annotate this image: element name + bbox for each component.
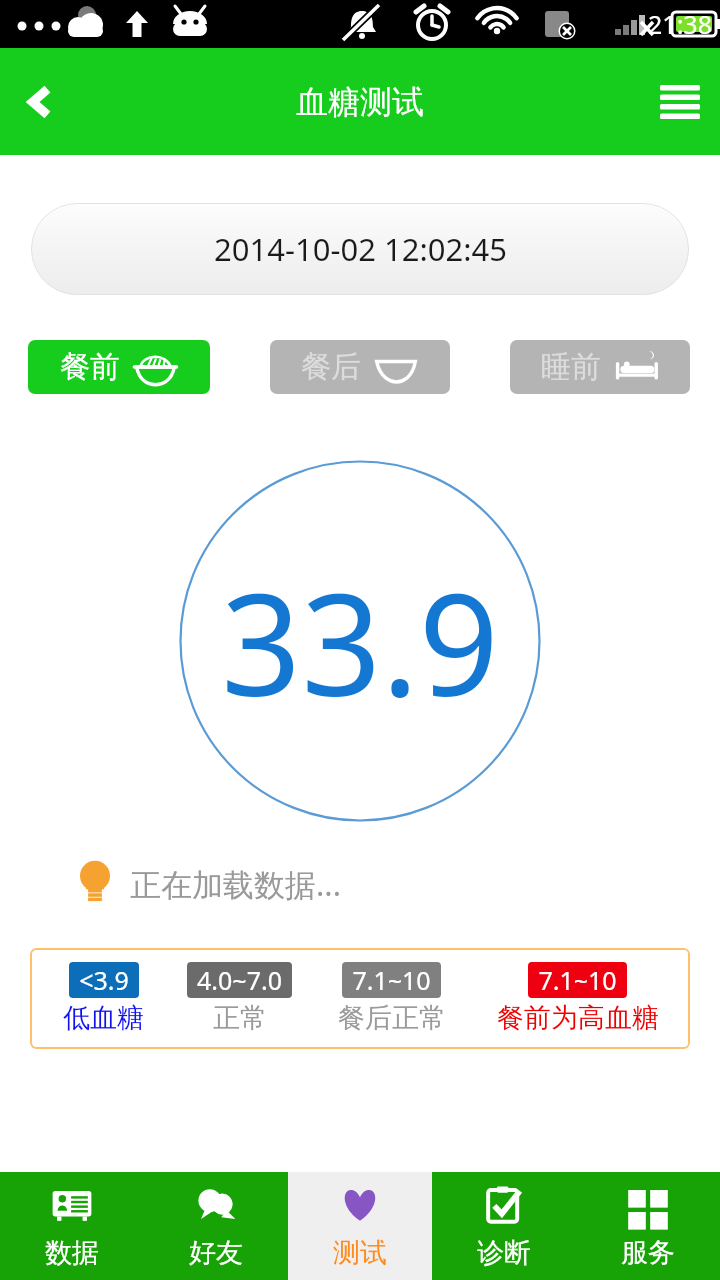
button[interactable]: 4.0~7.0: [169, 948, 310, 1049]
staticText: 好友: [189, 1236, 243, 1270]
button[interactable]: 睡前: [510, 340, 690, 394]
button[interactable]: 7.1~10: [310, 948, 473, 1049]
button[interactable]: 好友: [144, 1172, 288, 1280]
staticText: 正在加载数据...: [130, 863, 341, 905]
staticText: 21:38: [648, 7, 712, 41]
staticText: 正常: [213, 1001, 267, 1035]
button[interactable]: <3.9: [38, 948, 169, 1049]
button[interactable]: 7.1~10: [473, 948, 682, 1049]
button[interactable]: Back: [0, 48, 80, 155]
button[interactable]: 服务: [576, 1172, 720, 1280]
button[interactable]: 诊断: [432, 1172, 576, 1280]
button[interactable]: 餐后: [270, 340, 450, 394]
staticText: 餐后: [301, 348, 361, 386]
button[interactable]: 餐前: [28, 340, 210, 394]
staticText: 餐后正常: [338, 1001, 446, 1035]
button[interactable]: 2014-10-02 12:02:45: [31, 203, 689, 295]
staticText: 血糖测试: [296, 82, 424, 122]
button[interactable]: Menu: [640, 48, 720, 155]
staticText: 2014-10-02 12:02:45: [214, 228, 507, 270]
staticText: 4.0~7.0: [197, 963, 282, 997]
staticText: 7.1~10: [538, 963, 617, 997]
staticText: 低血糖: [63, 1001, 144, 1035]
staticText: 餐前: [60, 348, 120, 386]
staticText: 睡前: [541, 348, 601, 386]
staticText: 数据: [45, 1236, 99, 1270]
staticText: 7.1~10: [352, 963, 431, 997]
staticText: 餐前为高血糖: [497, 1001, 659, 1035]
staticText: <3.9: [79, 963, 129, 997]
staticText: 33.9: [221, 546, 499, 737]
button[interactable]: 测试: [288, 1172, 432, 1280]
staticText: 服务: [621, 1236, 675, 1270]
staticText: 测试: [333, 1236, 387, 1270]
staticText: 诊断: [477, 1236, 531, 1270]
button[interactable]: 数据: [0, 1172, 144, 1280]
